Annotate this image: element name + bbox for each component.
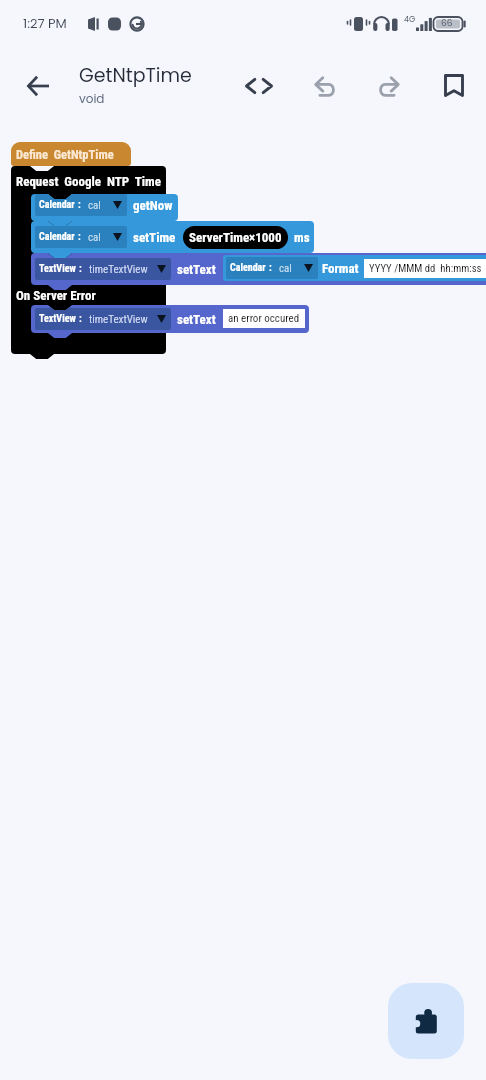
staticText: setTime xyxy=(133,230,176,245)
button[interactable]: TextView xyxy=(39,258,166,280)
staticText: YYYY /MMM dd hh:mm:ss xyxy=(369,262,482,275)
staticText: Format xyxy=(322,261,359,276)
staticText: On Server Error xyxy=(16,288,96,303)
staticText: TextView xyxy=(39,313,76,325)
staticText: timeTextView xyxy=(89,263,148,276)
staticText: an error occured xyxy=(228,312,300,325)
staticText: Calendar xyxy=(39,231,75,243)
staticText: : xyxy=(79,263,82,275)
staticText: cal xyxy=(88,199,101,212)
button[interactable]: TextView xyxy=(35,305,305,338)
staticText: TextView xyxy=(39,263,76,275)
button[interactable]: Calendar xyxy=(35,194,173,226)
button[interactable]: Calendar xyxy=(230,257,313,279)
button[interactable]: TextView xyxy=(35,253,486,290)
staticText: cal xyxy=(279,262,292,275)
staticText: Define GetNtpTime xyxy=(16,147,114,162)
button[interactable]: Bookmark xyxy=(432,63,476,107)
staticText: 4G xyxy=(404,14,416,25)
staticText: GetNtpTime xyxy=(79,62,192,89)
staticText: : xyxy=(78,199,81,211)
staticText: timeTextView xyxy=(89,313,148,326)
button[interactable]: Back xyxy=(16,64,60,108)
staticText: cal xyxy=(88,231,101,244)
button[interactable]: View code xyxy=(237,64,281,108)
button[interactable]: Define GetNtpTime xyxy=(11,142,131,166)
button[interactable]: Undo xyxy=(302,64,346,108)
button[interactable]: Calendar xyxy=(39,226,122,248)
staticText: setText xyxy=(177,262,216,277)
staticText: 66 xyxy=(441,17,453,30)
staticText: : xyxy=(269,262,272,274)
staticText: ServerTime×1000 xyxy=(189,230,282,245)
staticText: ms xyxy=(294,230,310,245)
staticText: Request Google NTP Time xyxy=(16,174,161,189)
staticText: : xyxy=(79,313,82,325)
button[interactable]: TextView xyxy=(39,308,166,330)
staticText: 1:27 PM xyxy=(23,14,67,32)
staticText: Calendar xyxy=(230,262,266,274)
staticText: void xyxy=(79,90,105,107)
button[interactable]: Calendar xyxy=(35,221,310,258)
button[interactable]: Add block xyxy=(388,983,464,1059)
button[interactable] xyxy=(11,166,166,359)
staticText: : xyxy=(78,231,81,243)
staticText: getNow xyxy=(133,198,173,213)
button[interactable]: Redo xyxy=(367,64,411,108)
staticText: Calendar xyxy=(39,199,75,211)
staticText: setText xyxy=(177,312,216,327)
button[interactable]: Calendar xyxy=(39,194,122,216)
